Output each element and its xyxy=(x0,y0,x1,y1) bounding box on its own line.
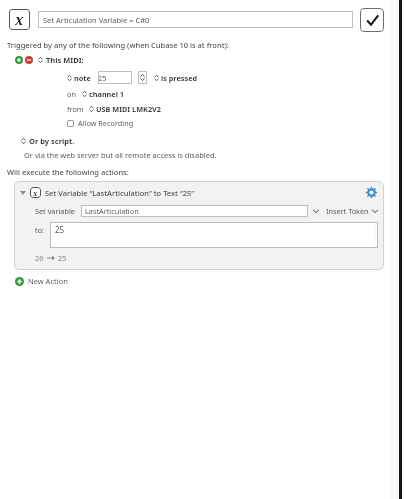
button[interactable]: LastArticulation xyxy=(81,205,308,217)
staticText: 26 xyxy=(35,253,44,263)
button[interactable]: Step note value xyxy=(138,71,147,84)
staticText: Set variable xyxy=(35,206,75,216)
staticText: Or via the web server but all remote acc… xyxy=(24,150,217,160)
button[interactable]: Macro icon xyxy=(9,9,30,30)
button[interactable]: channel 1 xyxy=(82,89,124,99)
staticText: on xyxy=(67,89,76,99)
button[interactable]: Or by script. xyxy=(21,136,75,146)
staticText: Set Variable “LastArticulation” to Text … xyxy=(45,188,195,198)
button[interactable]: This MIDI: xyxy=(38,55,84,65)
staticText: Allow Recording xyxy=(78,118,134,128)
button[interactable]: Add trigger xyxy=(15,56,23,64)
staticText: Or by script. xyxy=(29,136,75,146)
button[interactable]: Allow Recording xyxy=(67,118,134,128)
staticText: 25 xyxy=(98,73,130,83)
staticText: note xyxy=(74,73,91,83)
staticText: from xyxy=(67,104,84,114)
staticText: channel 1 xyxy=(89,89,124,99)
staticText: x xyxy=(15,10,24,29)
staticText: is pressed xyxy=(161,73,198,83)
button[interactable]: is pressed xyxy=(154,73,198,83)
staticText: This MIDI: xyxy=(46,55,84,65)
button[interactable]: 25 xyxy=(50,222,378,248)
staticText: LastArticulation xyxy=(85,206,139,216)
staticText: x xyxy=(33,188,38,198)
button[interactable]: Action settings xyxy=(365,186,378,199)
button[interactable]: note xyxy=(67,73,91,83)
button[interactable]: 25 xyxy=(98,71,132,84)
staticText: USB MIDI LMK2V2 xyxy=(96,104,161,114)
button[interactable]: Remove trigger xyxy=(25,56,33,64)
staticText: 25 xyxy=(58,253,67,263)
button[interactable]: Macro enabled xyxy=(360,8,384,32)
staticText: Will execute the following actions: xyxy=(7,167,129,177)
staticText: 25 xyxy=(55,224,65,235)
button[interactable]: New Action xyxy=(15,276,68,286)
staticText: to: xyxy=(35,225,45,235)
button[interactable]: Choose variable xyxy=(313,209,319,213)
staticText: Set Articulation Variable = C#0 xyxy=(43,15,150,25)
button[interactable]: Insert Token xyxy=(326,206,378,216)
staticText: Triggered by any of the following (when … xyxy=(7,40,229,50)
staticText: New Action xyxy=(28,276,68,286)
button[interactable]: x xyxy=(14,181,384,270)
button[interactable]: Set Articulation Variable = C#0 xyxy=(38,11,353,28)
button[interactable]: USB MIDI LMK2V2 xyxy=(89,104,161,114)
staticText: Insert Token xyxy=(326,206,369,216)
